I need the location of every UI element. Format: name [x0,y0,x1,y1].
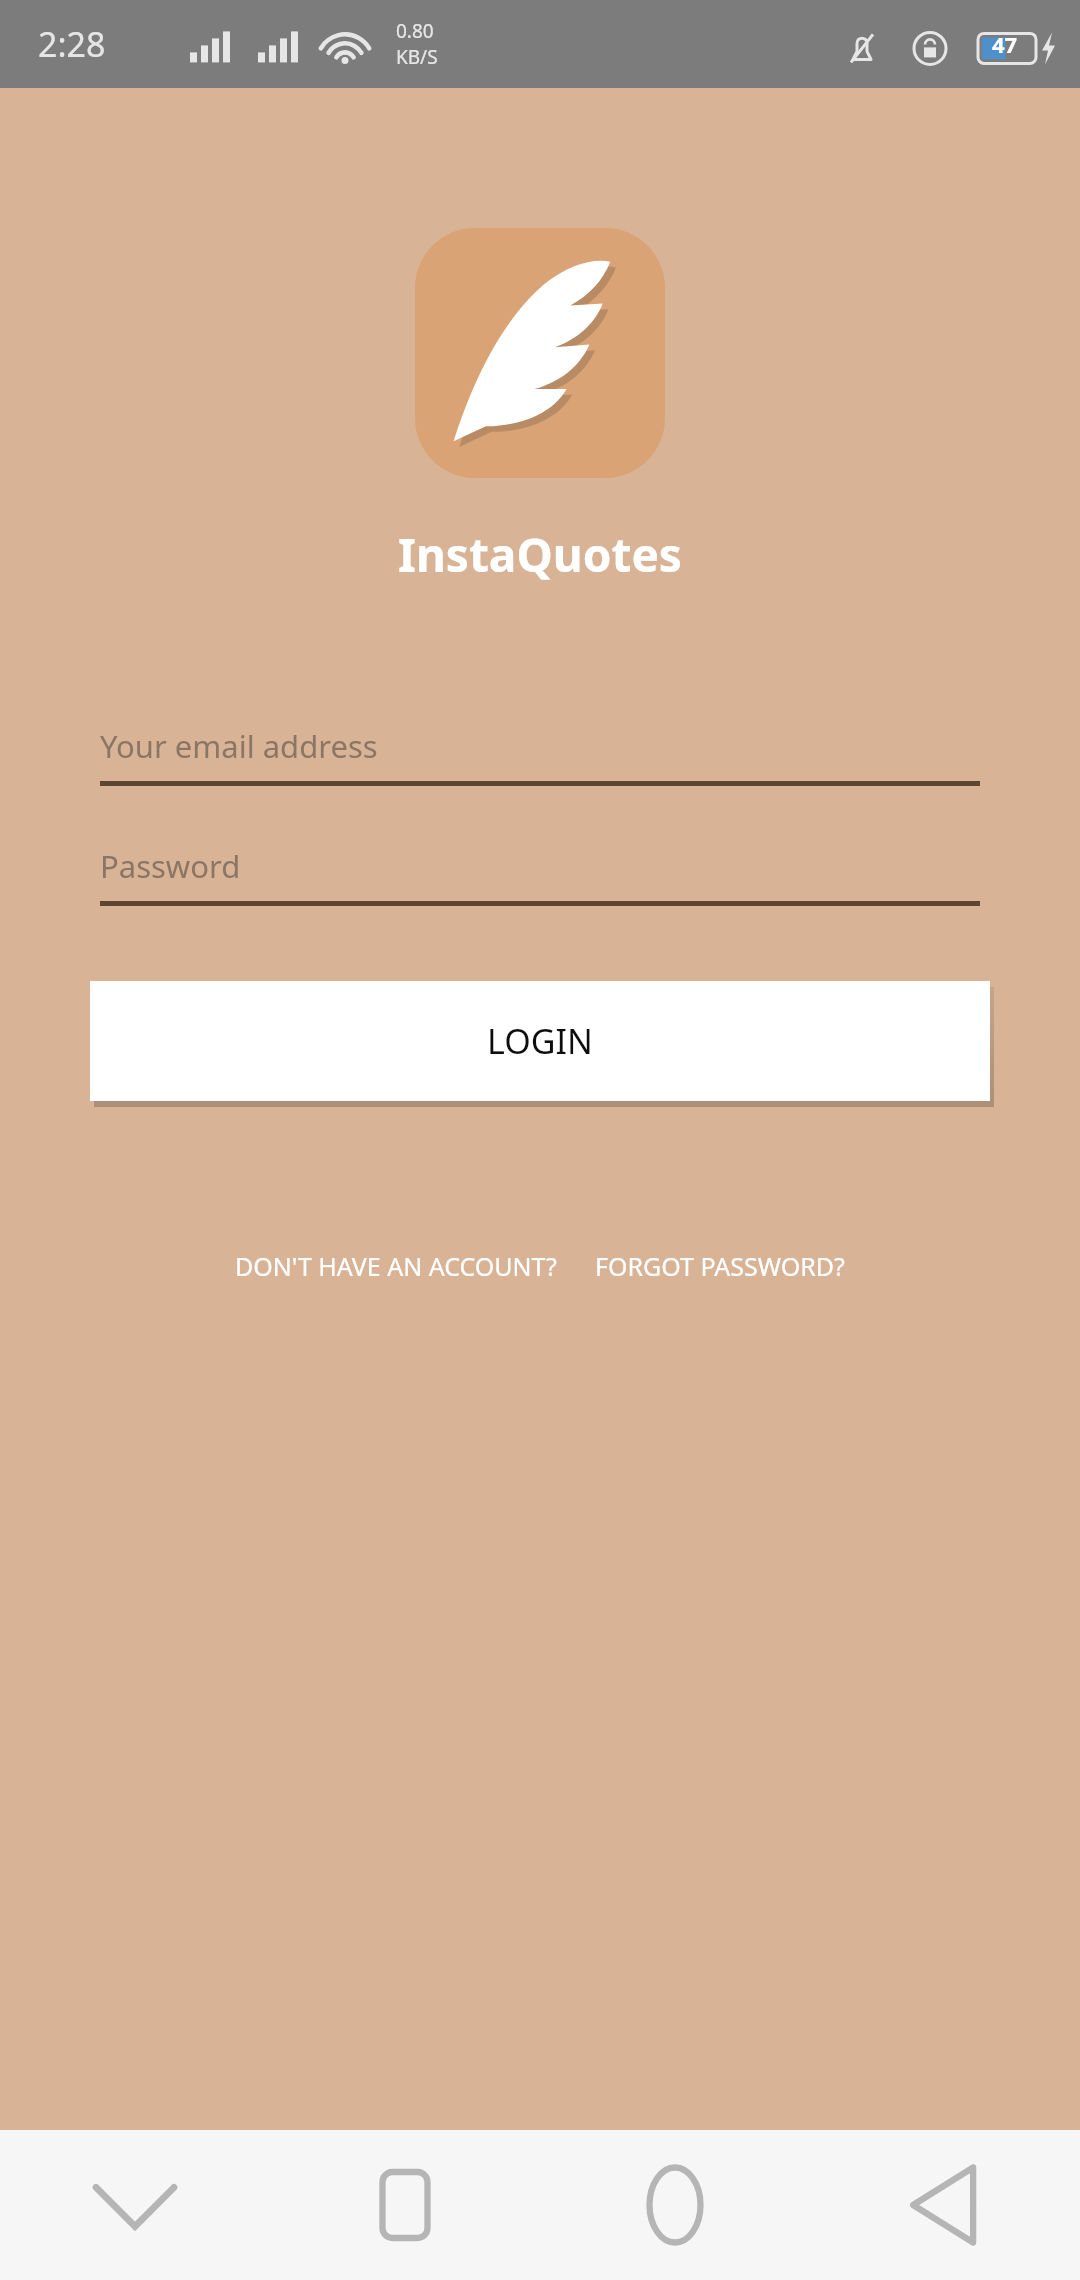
staticText: InstaQuotes [398,523,682,586]
staticText: DON'T HAVE AN ACCOUNT? [235,1249,557,1283]
button[interactable]: Home [540,2130,810,2280]
button[interactable]: LOGIN [90,981,990,1101]
staticText: 47 [992,29,1018,59]
staticText: Your email address [100,725,378,767]
button[interactable]: Recent apps [270,2130,540,2280]
staticText: 0.80 [396,18,434,44]
button[interactable]: Password [100,831,980,906]
button[interactable]: DON'T HAVE AN ACCOUNT? [229,1239,563,1293]
staticText: Password [100,845,241,887]
button[interactable]: Back [810,2130,1080,2280]
button[interactable]: FORGOT PASSWORD? [589,1239,851,1293]
button[interactable]: Your email address [100,711,980,786]
button[interactable]: Hide keyboard [0,2130,270,2280]
staticText: 2:28 [38,21,106,67]
staticText: KB/S [396,44,438,70]
staticText: LOGIN [487,1018,593,1064]
staticText: FORGOT PASSWORD? [595,1249,845,1283]
